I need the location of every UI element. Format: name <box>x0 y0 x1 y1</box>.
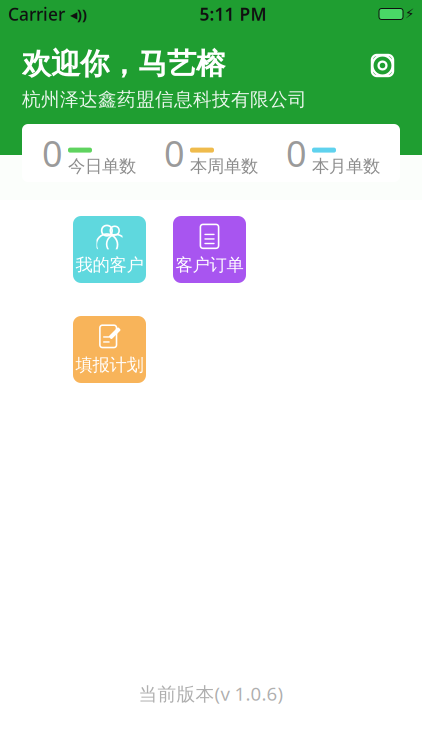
staticText: 今日单数 <box>68 156 136 177</box>
staticText: 填报计划 <box>75 354 143 376</box>
button[interactable]: 设置 <box>365 48 400 83</box>
staticText: 本月单数 <box>312 156 380 177</box>
staticText: 0 <box>286 129 307 177</box>
staticText: 客户订单 <box>175 254 243 276</box>
button[interactable]: 填报计划 <box>73 316 146 383</box>
staticText: 0 <box>164 129 185 177</box>
staticText: ◂)) <box>70 4 87 24</box>
staticText: 5:11 PM <box>199 2 266 25</box>
staticText: 0 <box>42 129 63 177</box>
staticText: 本周单数 <box>190 156 258 177</box>
staticText: Carrier <box>8 2 65 25</box>
button[interactable]: 客户订单 <box>173 216 246 283</box>
staticText: 欢迎你，马艺榕 <box>22 46 225 82</box>
staticText: 杭州泽达鑫药盟信息科技有限公司 <box>22 88 307 111</box>
staticText: 我的客户 <box>75 254 143 276</box>
button[interactable]: 我的客户 <box>73 216 146 283</box>
staticText: ⚡︎ <box>405 6 414 21</box>
staticText: 当前版本(v 1.0.6) <box>138 681 283 706</box>
